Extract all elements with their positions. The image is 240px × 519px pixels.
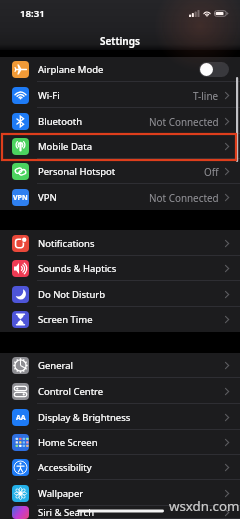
staticText: Home Screen: [38, 436, 98, 449]
button[interactable]: Bluetooth: [0, 108, 240, 134]
staticText: Settings: [100, 34, 140, 48]
staticText: Airplane Mode: [38, 63, 104, 76]
button[interactable]: Wi-Fi: [0, 82, 240, 108]
staticText: Siri & Search: [38, 506, 95, 519]
button[interactable]: Do Not Disturb: [0, 281, 240, 307]
staticText: VPN: [13, 193, 28, 203]
button[interactable]: AA: [0, 404, 240, 430]
button[interactable]: Wallpaper: [0, 480, 240, 506]
staticText: wsxdn.com: [169, 497, 240, 515]
button[interactable]: Notifications: [0, 230, 240, 256]
staticText: Not Connected: [149, 191, 219, 204]
staticText: Display & Brightness: [38, 411, 131, 424]
staticText: General: [38, 359, 74, 372]
button[interactable]: Mobile Data: [0, 134, 240, 159]
button[interactable]: Personal Hotspot: [0, 159, 240, 184]
staticText: T-line: [193, 89, 219, 102]
staticText: Sounds & Haptics: [38, 262, 117, 275]
button[interactable]: Control Centre: [0, 378, 240, 404]
staticText: 18:31: [20, 7, 45, 20]
staticText: Control Centre: [38, 385, 104, 398]
button[interactable]: Airplane Mode: [0, 57, 240, 82]
staticText: Bluetooth: [38, 115, 83, 128]
button[interactable]: Home Screen: [0, 430, 240, 455]
staticText: Mobile Data: [38, 140, 92, 153]
staticText: Notifications: [38, 237, 95, 250]
staticText: Not Connected: [149, 115, 219, 128]
staticText: Wi-Fi: [38, 89, 60, 102]
staticText: Personal Hotspot: [38, 165, 116, 178]
button[interactable]: Screen Time: [0, 307, 240, 332]
staticText: VPN: [38, 191, 57, 204]
button[interactable]: Siri & Search: [0, 506, 240, 519]
button[interactable]: Airplane Mode toggle: [199, 62, 229, 77]
staticText: Do Not Disturb: [38, 288, 106, 301]
button[interactable]: Sounds & Haptics: [0, 256, 240, 281]
button[interactable]: VPN: [0, 184, 240, 210]
button[interactable]: General: [0, 353, 240, 378]
staticText: AA: [16, 413, 26, 423]
staticText: Wallpaper: [38, 487, 84, 500]
button[interactable]: Accessibility: [0, 455, 240, 480]
staticText: Accessibility: [38, 461, 92, 474]
staticText: Screen Time: [38, 313, 93, 326]
staticText: Off: [204, 165, 219, 178]
